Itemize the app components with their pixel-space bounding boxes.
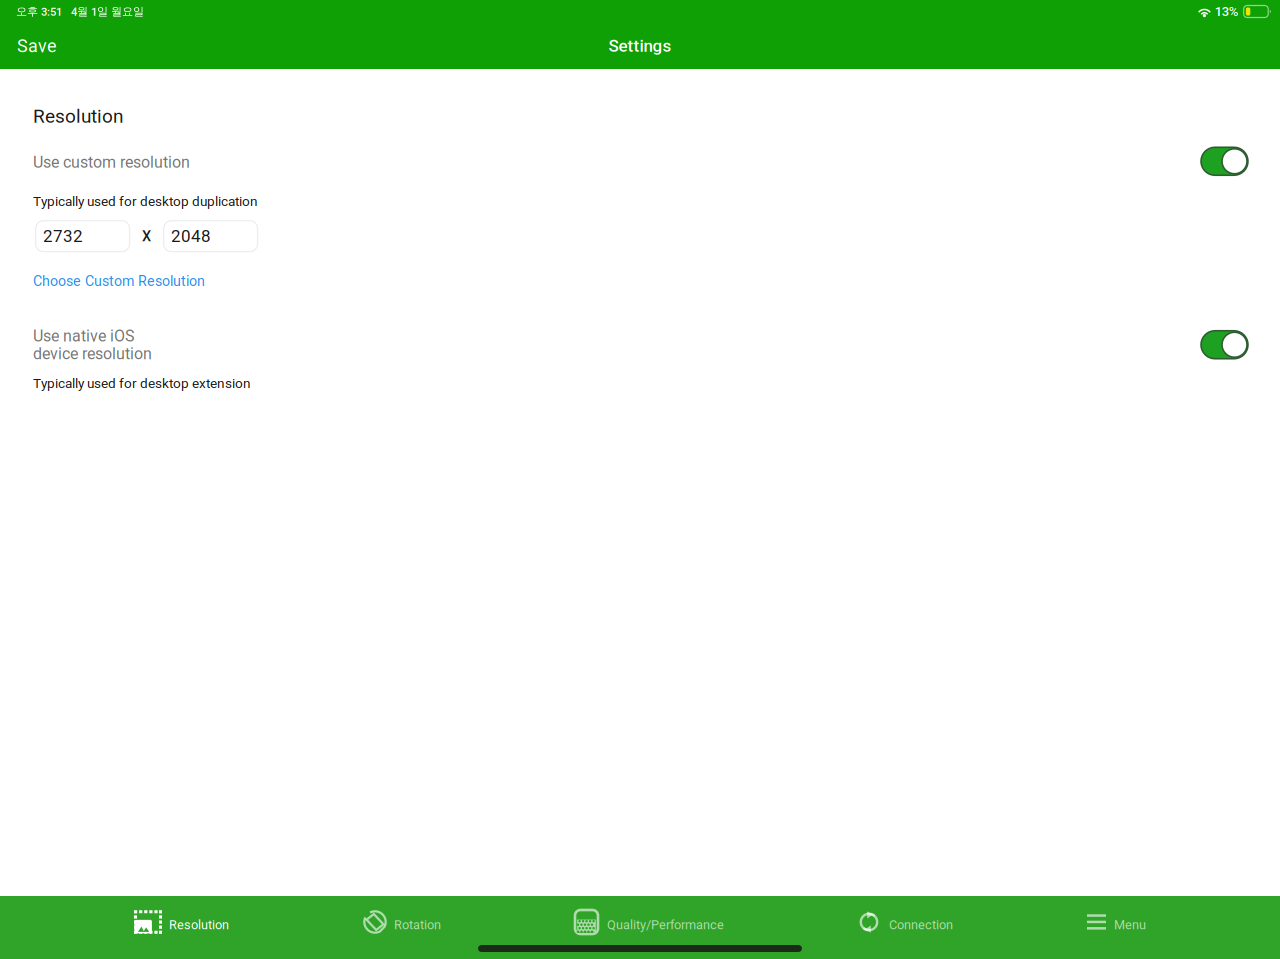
button[interactable]: Connection xyxy=(858,896,953,959)
staticText: Use custom resolution xyxy=(33,153,190,172)
staticText: 2732 xyxy=(43,226,83,246)
staticText: 13% xyxy=(1215,4,1239,19)
staticText: Menu xyxy=(1114,918,1146,932)
staticText: X xyxy=(142,228,151,245)
staticText: 오후 3:51 4월 1일 월요일 xyxy=(16,4,144,18)
staticText: Typically used for desktop duplication xyxy=(33,193,258,209)
staticText: Typically used for desktop extension xyxy=(33,375,251,391)
button[interactable]: 2048 xyxy=(164,221,258,252)
button[interactable]: Rotation xyxy=(363,896,441,959)
staticText: Settings xyxy=(608,36,671,56)
staticText: Rotation xyxy=(394,918,441,932)
staticText: Choose Custom Resolution xyxy=(33,273,205,289)
button[interactable]: Save xyxy=(0,23,74,69)
staticText: 2048 xyxy=(171,226,211,246)
button[interactable]: Toggle xyxy=(1201,147,1248,175)
button[interactable]: Quality/Performance xyxy=(575,896,724,959)
staticText: Use native iOS xyxy=(33,327,135,345)
staticText: Resolution xyxy=(169,918,229,932)
staticText: Save xyxy=(17,35,57,57)
staticText: Resolution xyxy=(33,105,123,127)
staticText: Quality/Performance xyxy=(607,918,724,932)
button[interactable]: Toggle xyxy=(1201,331,1248,359)
staticText: Connection xyxy=(889,918,953,932)
button[interactable]: Menu xyxy=(1087,896,1146,959)
button[interactable]: Resolution xyxy=(134,896,229,959)
staticText: device resolution xyxy=(33,344,152,363)
button[interactable]: Choose Custom Resolution xyxy=(33,273,205,289)
button[interactable]: 2732 xyxy=(36,221,130,252)
